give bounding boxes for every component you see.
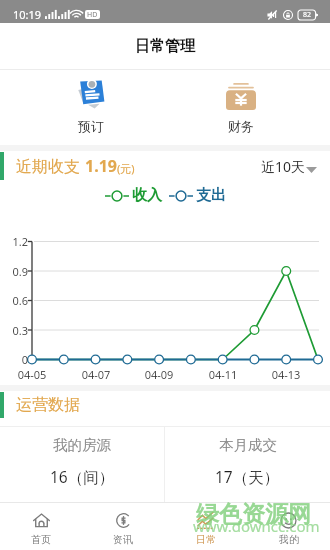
staticText: 10:19	[13, 7, 42, 22]
staticText: 04-07	[76, 367, 116, 382]
button[interactable]: 财务	[211, 70, 271, 145]
staticText: 82	[303, 10, 312, 20]
staticText: 1.2	[0, 234, 28, 249]
staticText: 17（天）	[215, 466, 280, 487]
staticText: HD	[87, 10, 98, 19]
staticText: 0	[0, 352, 28, 367]
button[interactable]: 我的	[247, 503, 330, 550]
button[interactable]: 我的房源	[0, 427, 164, 502]
staticText: 近10天	[261, 157, 306, 176]
staticText: 04-09	[139, 367, 179, 382]
button[interactable]: 日常	[164, 503, 247, 550]
staticText: 财务	[228, 118, 254, 134]
staticText: 04-13	[266, 367, 306, 382]
staticText: 日常	[196, 533, 216, 546]
staticText: 0.6	[0, 293, 28, 308]
staticText: (元)	[117, 161, 135, 176]
staticText: 1.19	[85, 155, 117, 177]
button[interactable]: 首页	[0, 503, 82, 550]
staticText: 04-11	[203, 367, 243, 382]
staticText: 日常管理	[135, 37, 195, 56]
staticText: 0.3	[0, 323, 28, 338]
staticText: 资讯	[113, 533, 133, 546]
staticText: 首页	[31, 533, 51, 546]
staticText: 收入	[132, 186, 162, 205]
staticText: 预订	[78, 118, 104, 134]
staticText: 16（间）	[50, 466, 115, 487]
button[interactable]: 资讯	[82, 503, 164, 550]
staticText: 支出	[196, 186, 226, 205]
staticText: 我的	[279, 533, 299, 546]
staticText: 我的房源	[53, 436, 111, 454]
staticText: 04-05	[12, 367, 52, 382]
button[interactable]: 预订	[61, 70, 121, 145]
staticText: 近期收支	[16, 155, 85, 177]
staticText: www.downcc.com	[193, 516, 320, 536]
staticText: 0.9	[0, 264, 28, 279]
button[interactable]: 近10天	[261, 157, 317, 176]
staticText: 绿色资源网	[196, 500, 311, 529]
staticText: 运营数据	[16, 395, 80, 415]
staticText: 本月成交	[219, 436, 277, 454]
button[interactable]: 本月成交	[165, 427, 330, 502]
